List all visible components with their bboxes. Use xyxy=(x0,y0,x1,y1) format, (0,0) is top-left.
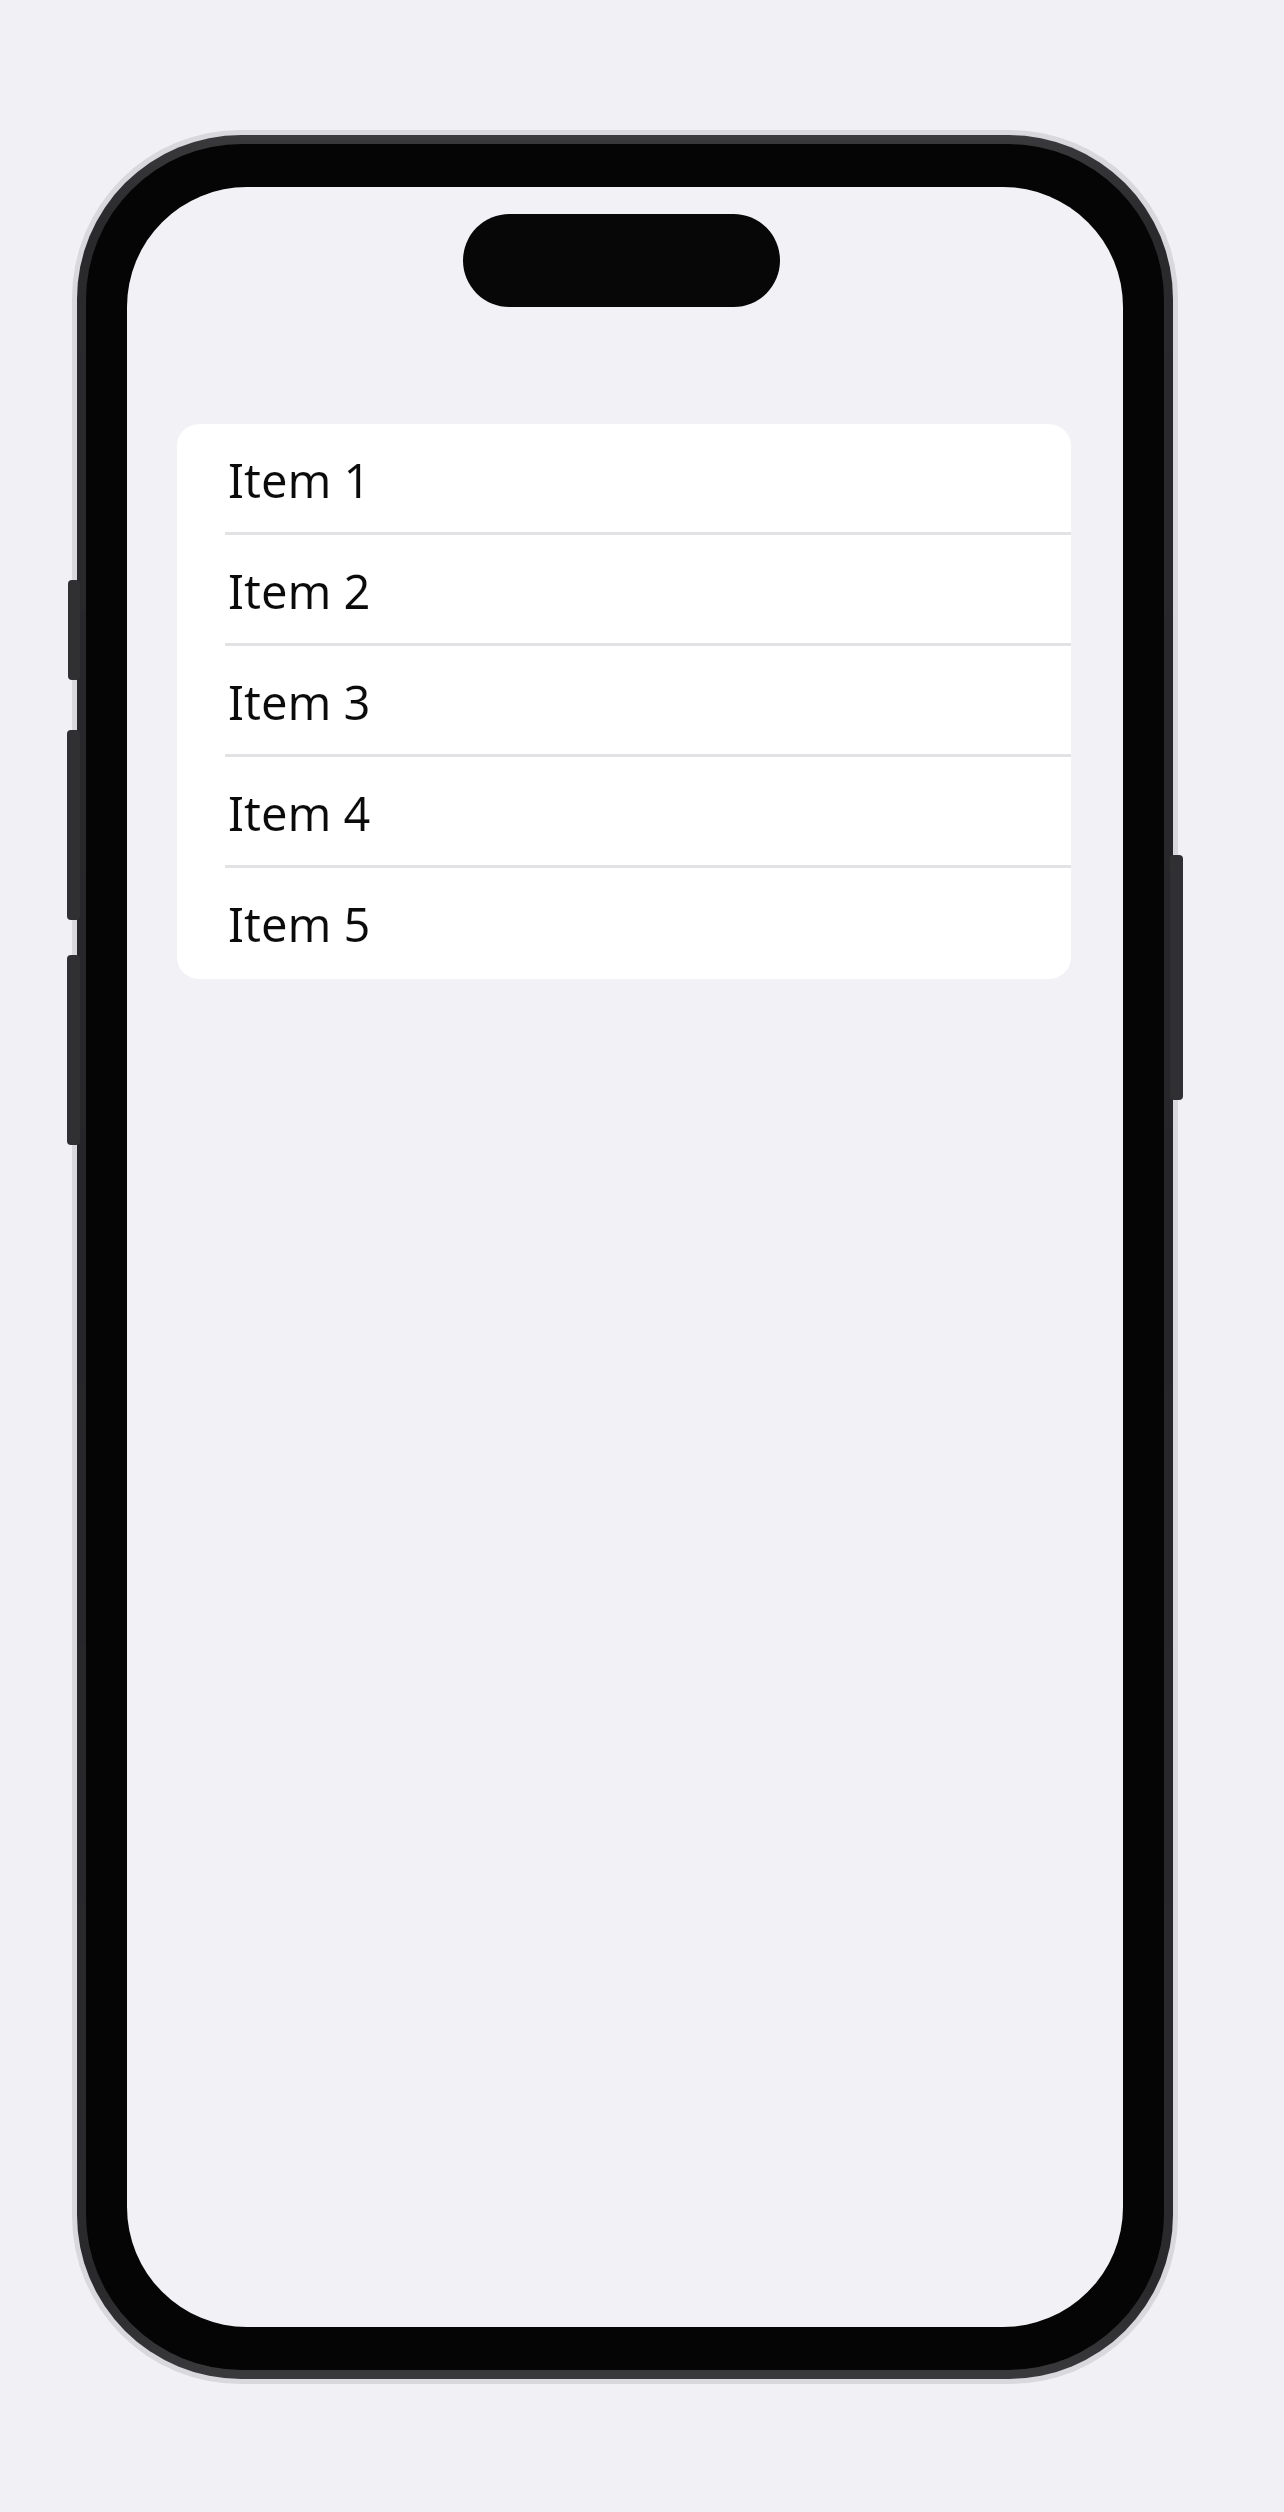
staticText: Item 3 xyxy=(228,670,371,734)
button[interactable]: Item 3 xyxy=(177,646,1071,757)
staticText: Item 2 xyxy=(228,559,371,623)
staticText: Item 4 xyxy=(228,781,371,845)
button[interactable]: Item 5 xyxy=(177,868,1071,979)
button[interactable]: Item 4 xyxy=(177,757,1071,868)
button[interactable]: Item 2 xyxy=(177,535,1071,646)
button[interactable]: Item 1 xyxy=(177,424,1071,535)
staticText: Item 5 xyxy=(228,892,371,956)
staticText: Item 1 xyxy=(228,448,371,512)
